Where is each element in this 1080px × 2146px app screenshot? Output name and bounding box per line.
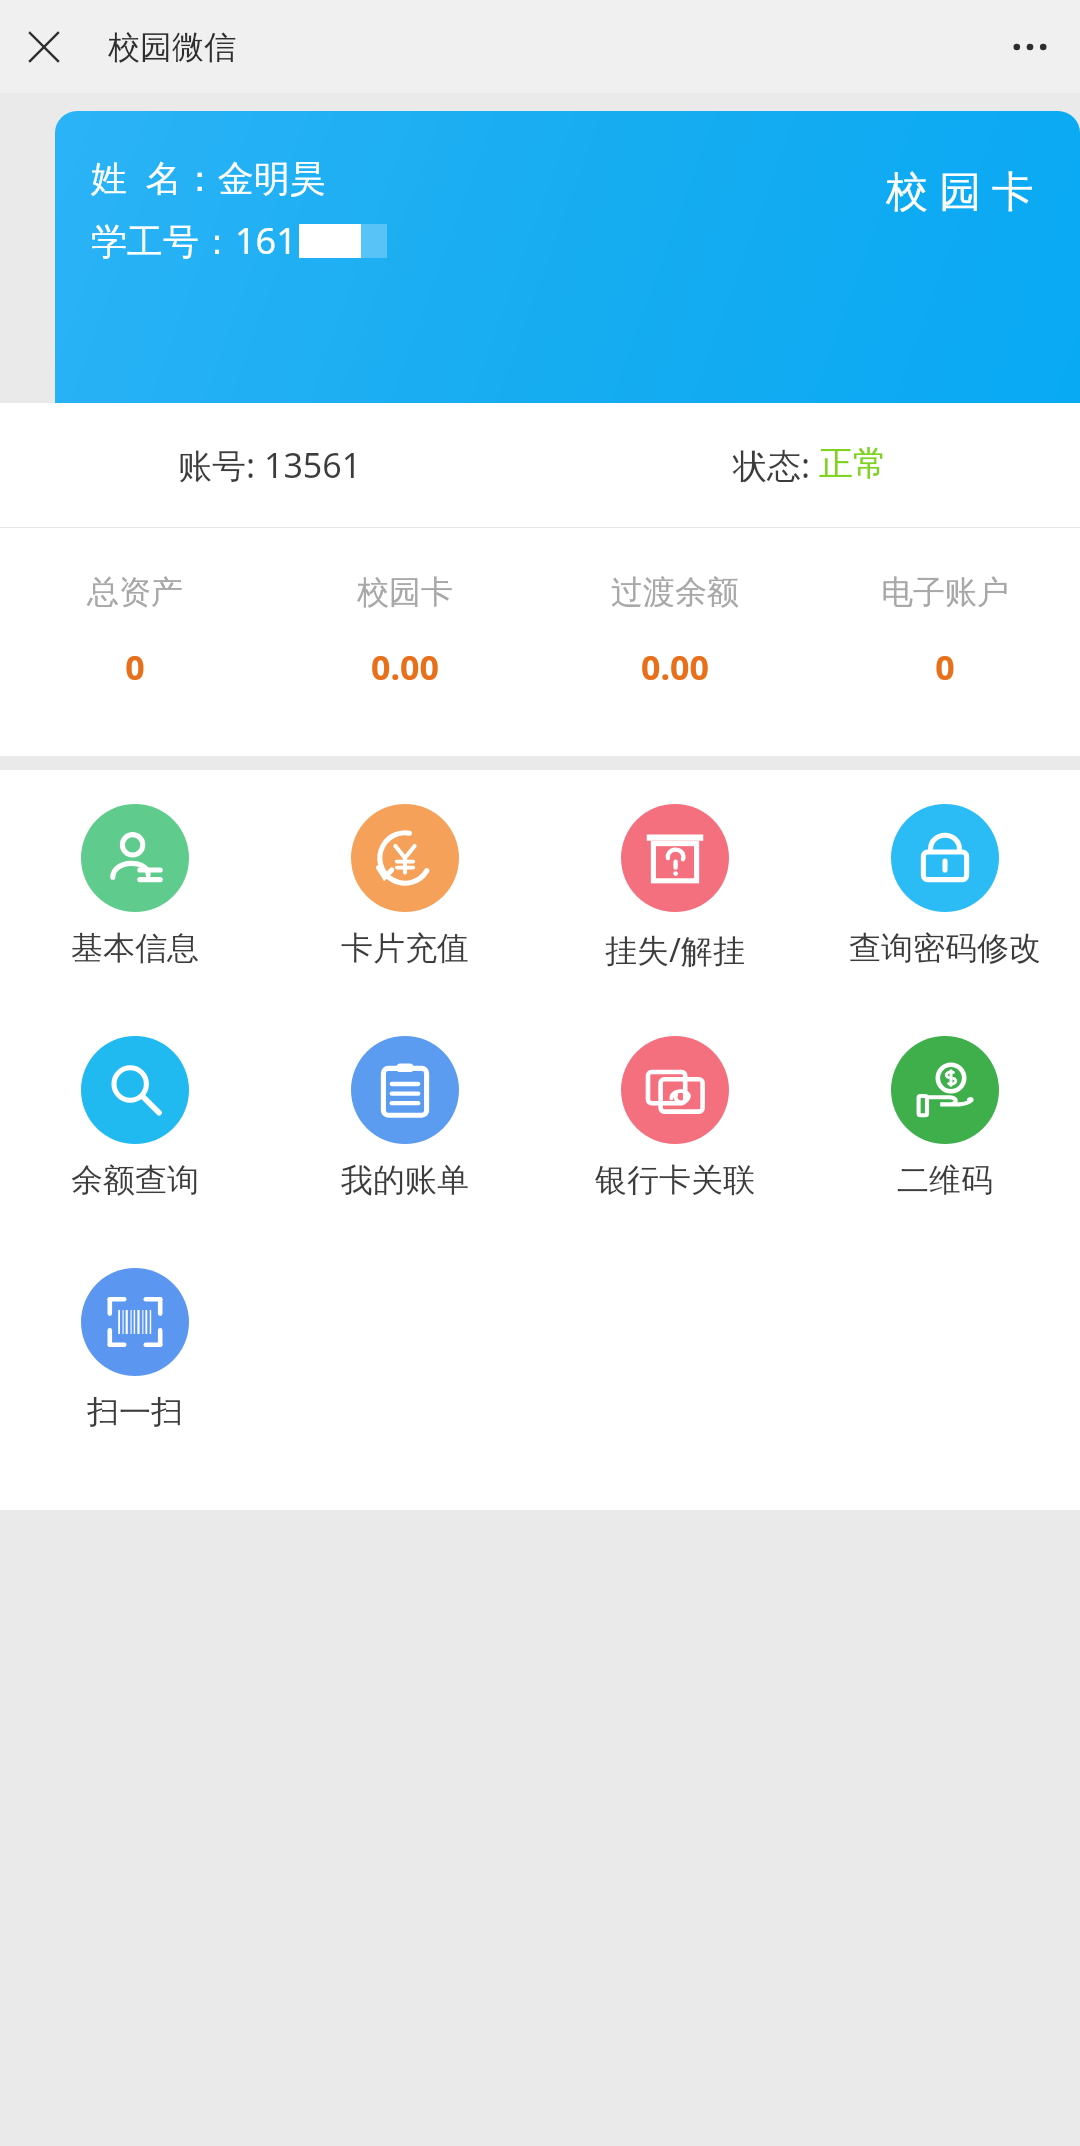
button[interactable]: 过渡余额 [540, 572, 810, 690]
staticText: 0 [935, 644, 955, 690]
button[interactable]: 银行卡关联 [540, 1036, 810, 1268]
staticText: 校园微信 [108, 27, 236, 67]
staticText: 银行卡关联 [595, 1160, 755, 1200]
button[interactable]: 电子账户 [810, 572, 1080, 690]
staticText: 挂失/解挂 [605, 928, 745, 972]
staticText: 扫一扫 [87, 1392, 183, 1432]
staticText: 学工号：161 [91, 216, 297, 265]
staticText: 基本信息 [71, 928, 199, 968]
staticText: 卡片充值 [341, 928, 469, 968]
staticText: 余额查询 [71, 1160, 199, 1200]
staticText: 账号: 13561 [178, 442, 362, 488]
button[interactable]: 查询密码修改 [810, 804, 1080, 1036]
staticText: 0.00 [641, 644, 709, 690]
staticText: 我的账单 [341, 1160, 469, 1200]
button[interactable]: Close [16, 19, 72, 75]
button[interactable]: 校园卡 [270, 572, 540, 690]
staticText: 状态: [733, 442, 819, 488]
button[interactable]: 姓 名：金明昊 [55, 111, 1080, 403]
staticText: 校园卡 [357, 572, 453, 612]
staticText: 0 [125, 644, 145, 690]
button[interactable]: 我的账单 [270, 1036, 540, 1268]
button[interactable]: 卡片充值 [270, 804, 540, 1036]
staticText: 0.00 [371, 644, 439, 690]
staticText: 正常 [819, 442, 887, 485]
button[interactable]: 扫一扫 [0, 1268, 270, 1500]
button[interactable]: 挂失/解挂 [540, 804, 810, 1036]
staticText: 过渡余额 [611, 572, 739, 612]
staticText: 总资产 [87, 572, 183, 612]
staticText: 二维码 [897, 1160, 993, 1200]
button[interactable]: 基本信息 [0, 804, 270, 1036]
button[interactable]: 余额查询 [0, 1036, 270, 1268]
staticText: 姓 名：金明昊 [91, 153, 326, 202]
staticText: 校 园 卡 [886, 161, 1034, 218]
button[interactable]: 总资产 [0, 572, 270, 690]
button[interactable]: More options [1000, 17, 1060, 77]
staticText: 查询密码修改 [849, 928, 1041, 968]
staticText: 电子账户 [881, 572, 1009, 612]
button[interactable]: 二维码 [810, 1036, 1080, 1268]
